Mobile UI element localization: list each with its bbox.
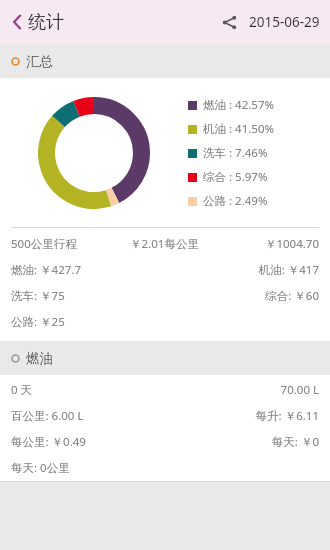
staticText: 每公里: ￥0.49 (11, 434, 165, 450)
button[interactable]: Back (0, 0, 28, 44)
staticText: ￥1004.70 (216, 236, 319, 252)
staticText: 燃油: ￥427.7 (11, 262, 165, 278)
staticText: ￥2.01每公里 (113, 236, 216, 252)
staticText: 公路: ￥25 (11, 314, 165, 330)
staticText: 500公里行程 (11, 236, 113, 252)
button[interactable]: Share (209, 2, 249, 42)
staticText: 燃油 (26, 350, 53, 367)
staticText: 机油: ￥417 (165, 262, 319, 278)
staticText: 燃油 : 42.57% (203, 97, 275, 113)
staticText: 洗车: ￥75 (11, 288, 165, 304)
staticText: 洗车 : 7.46% (203, 145, 268, 161)
staticText: 每天: 0公里 (11, 460, 165, 476)
staticText: 统计 (28, 11, 64, 34)
staticText: 70.00 L (165, 382, 319, 398)
staticText: 0 天 (11, 382, 165, 398)
staticText: 综合: ￥60 (165, 288, 319, 304)
staticText: 2015-06-29 (249, 13, 320, 31)
staticText: 机油 : 41.50% (203, 121, 275, 137)
staticText: 百公里: 6.00 L (11, 408, 165, 424)
staticText: 汇总 (26, 53, 53, 70)
button[interactable]: 汇总 (0, 44, 330, 78)
staticText: 公路 : 2.49% (203, 193, 268, 209)
staticText: 综合 : 5.97% (203, 169, 268, 185)
button[interactable]: 燃油 (0, 341, 330, 375)
staticText: 每天: ￥0 (165, 434, 319, 450)
staticText: 每升: ￥6.11 (165, 408, 319, 424)
